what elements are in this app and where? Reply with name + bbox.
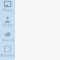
staticText: Albums	[0, 52, 14, 58]
button[interactable]: Albums	[0, 45, 15, 60]
staticText: Shared	[1, 37, 13, 43]
button[interactable]: People	[0, 15, 15, 30]
button[interactable]: Photos	[0, 0, 15, 15]
button[interactable]: Shared	[0, 30, 15, 45]
staticText: Photos	[2, 7, 13, 13]
staticText: People	[2, 22, 13, 28]
